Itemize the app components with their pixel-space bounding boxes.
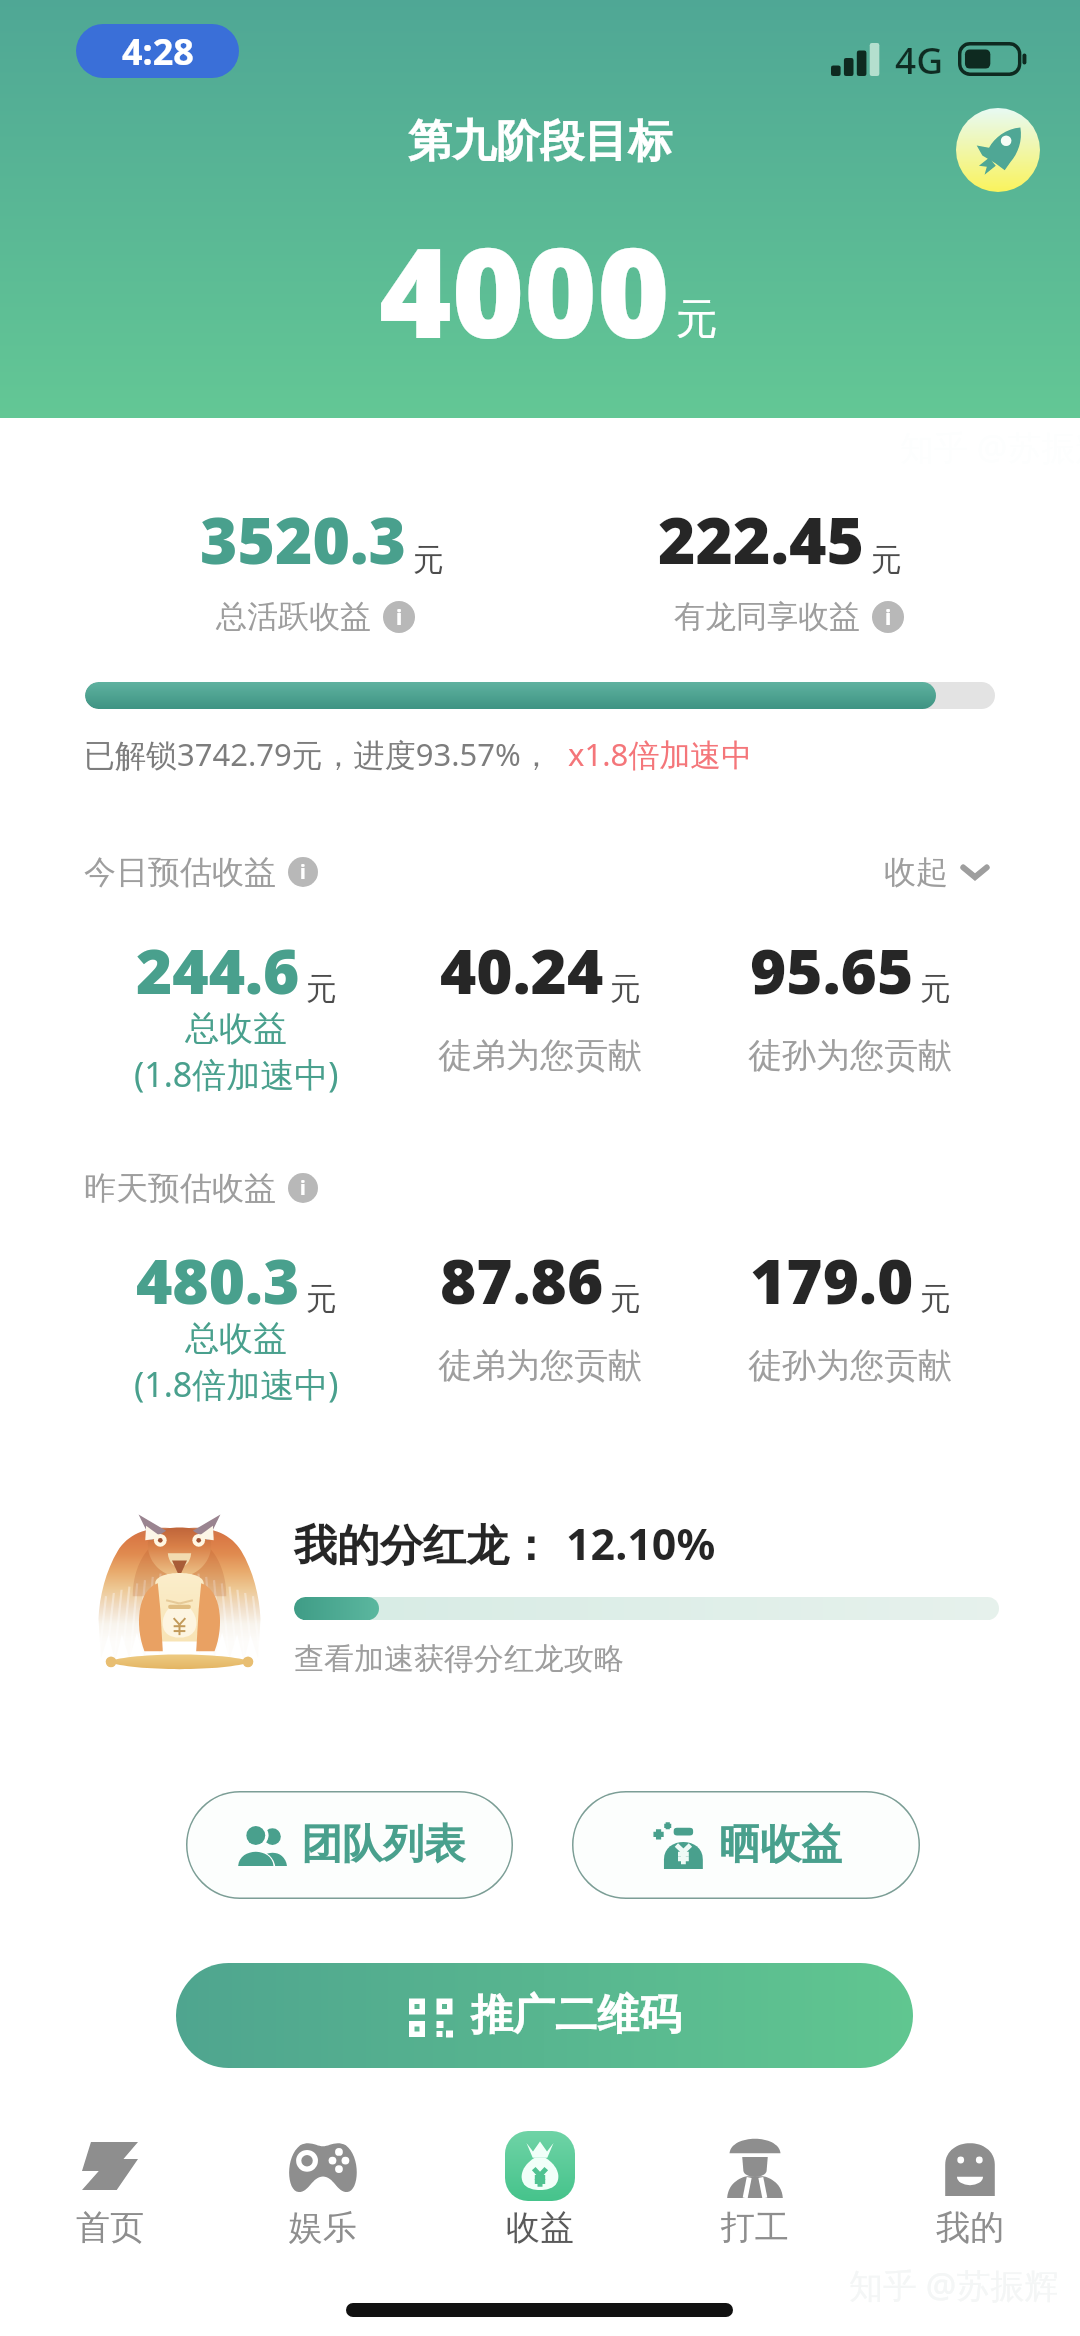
staticText: 3520.3	[200, 496, 407, 583]
staticText: 元	[920, 969, 951, 1008]
staticText: 总活跃收益	[216, 597, 371, 636]
staticText: (1.8倍加速中)	[134, 1051, 339, 1097]
staticText: 179.0	[750, 1238, 914, 1322]
staticText: 打工	[721, 2206, 789, 2249]
staticText: 95.65	[750, 928, 914, 1012]
staticText: x1.8倍加速中	[568, 733, 753, 775]
button[interactable]: 说明	[383, 601, 415, 633]
staticText: 元	[920, 1279, 951, 1318]
staticText: 知乎 @苏振辉	[849, 2262, 1059, 2308]
staticText: 244.6	[136, 928, 300, 1012]
staticText: 4G	[895, 34, 944, 84]
staticText: 已解锁3742.79元，进度93.57%，	[84, 733, 552, 775]
button[interactable]: 查看加速获得分红龙攻略	[294, 1640, 624, 1678]
button[interactable]: 收起	[884, 852, 988, 892]
staticText: 40.24	[440, 928, 604, 1012]
staticText: 收益	[506, 2206, 574, 2249]
staticText: 元	[871, 540, 902, 579]
staticText: 徒孙为您贡献	[748, 1034, 952, 1077]
staticText: 元	[306, 1279, 337, 1318]
staticText: 推广二维码	[471, 1989, 681, 2042]
staticText: 元	[413, 540, 444, 579]
button[interactable]: 我的	[880, 2126, 1060, 2249]
staticText: 徒弟为您贡献	[438, 1034, 642, 1077]
staticText: (1.8倍加速中)	[134, 1361, 339, 1407]
staticText: 有龙同享收益	[674, 597, 860, 636]
staticText: 元	[306, 969, 337, 1008]
button[interactable]: 晒收益	[572, 1791, 920, 1899]
staticText: 480.3	[136, 1238, 300, 1322]
button[interactable]: 说明	[288, 1173, 318, 1203]
staticText: 12.10%	[566, 1514, 716, 1573]
staticText: i	[396, 603, 403, 632]
button[interactable]: 团队列表	[186, 1791, 513, 1899]
staticText: 昨天预估收益	[84, 1168, 276, 1208]
button[interactable]: 推广二维码	[176, 1963, 913, 2068]
staticText: 4000	[379, 205, 670, 374]
staticText: 总收益	[185, 1007, 287, 1050]
staticText: 元	[610, 1279, 641, 1318]
button[interactable]: 娱乐	[233, 2126, 413, 2249]
staticText: 元	[610, 969, 641, 1008]
staticText: 团队列表	[301, 1819, 465, 1871]
staticText: 222.45	[658, 496, 865, 583]
staticText: 4:28	[122, 27, 194, 76]
button[interactable]: 说明	[288, 857, 318, 887]
staticText: 晒收益	[719, 1819, 842, 1871]
staticText: 徒弟为您贡献	[438, 1344, 642, 1387]
button[interactable]	[294, 1597, 999, 1620]
staticText: 元	[676, 293, 718, 346]
staticText: i	[300, 1175, 306, 1201]
staticText: 娱乐	[289, 2206, 357, 2249]
staticText: 87.86	[440, 1238, 604, 1322]
button[interactable]: 首页	[20, 2126, 200, 2249]
staticText: i	[885, 603, 892, 632]
staticText: 总收益	[185, 1317, 287, 1360]
staticText: i	[300, 859, 306, 885]
button[interactable]: 打工	[665, 2126, 845, 2249]
staticText: 徒孙为您贡献	[748, 1344, 952, 1387]
staticText: 第九阶段目标	[0, 114, 1080, 169]
staticText: 首页	[76, 2206, 144, 2249]
staticText: 收起	[884, 852, 948, 892]
staticText: 我的分红龙：	[294, 1519, 552, 1573]
button[interactable]: 收益	[450, 2126, 630, 2249]
staticText: 今日预估收益	[84, 852, 276, 892]
staticText: 我的	[936, 2206, 1004, 2249]
button[interactable]: 说明	[872, 601, 904, 633]
button[interactable]: 加速	[956, 108, 1040, 192]
